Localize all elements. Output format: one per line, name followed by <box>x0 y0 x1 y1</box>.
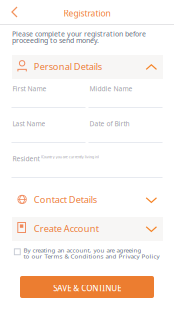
staticText: SAVE & CONTINUE <box>53 283 121 293</box>
button[interactable]: Last Name <box>11 121 85 143</box>
button[interactable]: Back <box>0 0 30 24</box>
staticText: proceeding to send money. <box>12 36 99 45</box>
staticText: Last Name <box>12 119 45 128</box>
button[interactable]: Date of Birth <box>88 121 162 143</box>
button[interactable]: Resident <box>11 156 162 178</box>
staticText: to our Terms & Conditions and Privacy Po… <box>23 252 159 260</box>
staticText: Personal Details <box>34 60 102 73</box>
button[interactable]: Contact Details <box>12 188 163 212</box>
button[interactable]: SAVE & CONTINUE <box>20 276 154 298</box>
button[interactable]: Personal Details <box>12 55 163 79</box>
staticText: By creating an account, you are agreeing <box>23 246 141 254</box>
button[interactable]: Create Account <box>12 217 163 241</box>
staticText: Contact Details <box>34 193 97 206</box>
button[interactable]: Middle Name <box>88 86 162 108</box>
staticText: Create Account <box>34 222 99 235</box>
staticText: First Name <box>12 84 46 93</box>
staticText: Registration <box>63 7 110 19</box>
staticText: Date of Birth <box>89 119 129 128</box>
staticText: (Country you are currently living in) <box>41 154 99 159</box>
staticText: Middle Name <box>89 84 132 93</box>
button[interactable]: First Name <box>11 86 85 108</box>
staticText: Resident <box>12 154 39 163</box>
staticText: Please complete your registration before <box>12 29 146 39</box>
